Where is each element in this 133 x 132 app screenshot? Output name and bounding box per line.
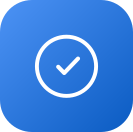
button[interactable]: Open app (0, 0, 133, 132)
